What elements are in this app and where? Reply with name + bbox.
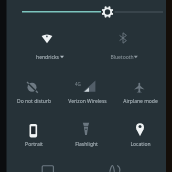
button[interactable]	[86, 150, 166, 172]
button[interactable]	[60, 108, 113, 150]
staticText: Airplane mode	[123, 98, 158, 105]
staticText: Portrait	[25, 141, 43, 148]
button[interactable]	[113, 66, 166, 108]
button[interactable]	[6, 108, 60, 150]
button[interactable]	[7, 0, 166, 24]
staticText: hendricks	[36, 54, 59, 61]
button[interactable]	[86, 26, 166, 66]
staticText: Do not disturb	[17, 98, 51, 105]
button[interactable]	[60, 66, 113, 108]
button[interactable]	[6, 150, 86, 172]
staticText: Flashlight	[75, 141, 98, 148]
staticText: Location	[130, 141, 151, 148]
button[interactable]	[6, 26, 86, 66]
button[interactable]	[6, 66, 60, 108]
staticText: Bluetooth	[110, 54, 134, 61]
staticText: 4G	[75, 81, 81, 87]
staticText: Verizon Wireless	[68, 98, 107, 105]
button[interactable]	[113, 108, 166, 150]
